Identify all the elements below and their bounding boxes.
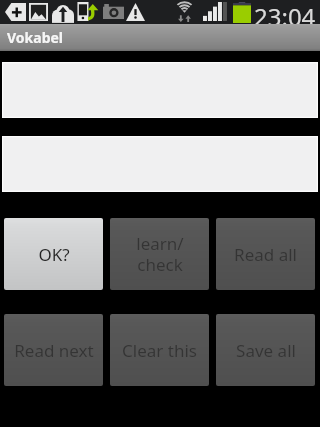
button[interactable]: Save all — [216, 314, 315, 386]
staticText: Save all — [236, 339, 296, 362]
button[interactable]: OK? — [4, 218, 103, 290]
staticText: learn/ check — [136, 232, 184, 276]
staticText: Read next — [14, 339, 94, 362]
staticText: Clear this — [122, 339, 197, 362]
staticText: Vokabel — [7, 28, 64, 47]
staticText: OK? — [38, 243, 70, 266]
button[interactable]: Read next — [4, 314, 103, 386]
staticText: 23:04 — [254, 0, 316, 24]
button[interactable]: learn/ check — [110, 218, 209, 290]
staticText: Read all — [234, 243, 297, 266]
button[interactable]: Clear this — [110, 314, 209, 386]
button[interactable]: Read all — [216, 218, 315, 290]
